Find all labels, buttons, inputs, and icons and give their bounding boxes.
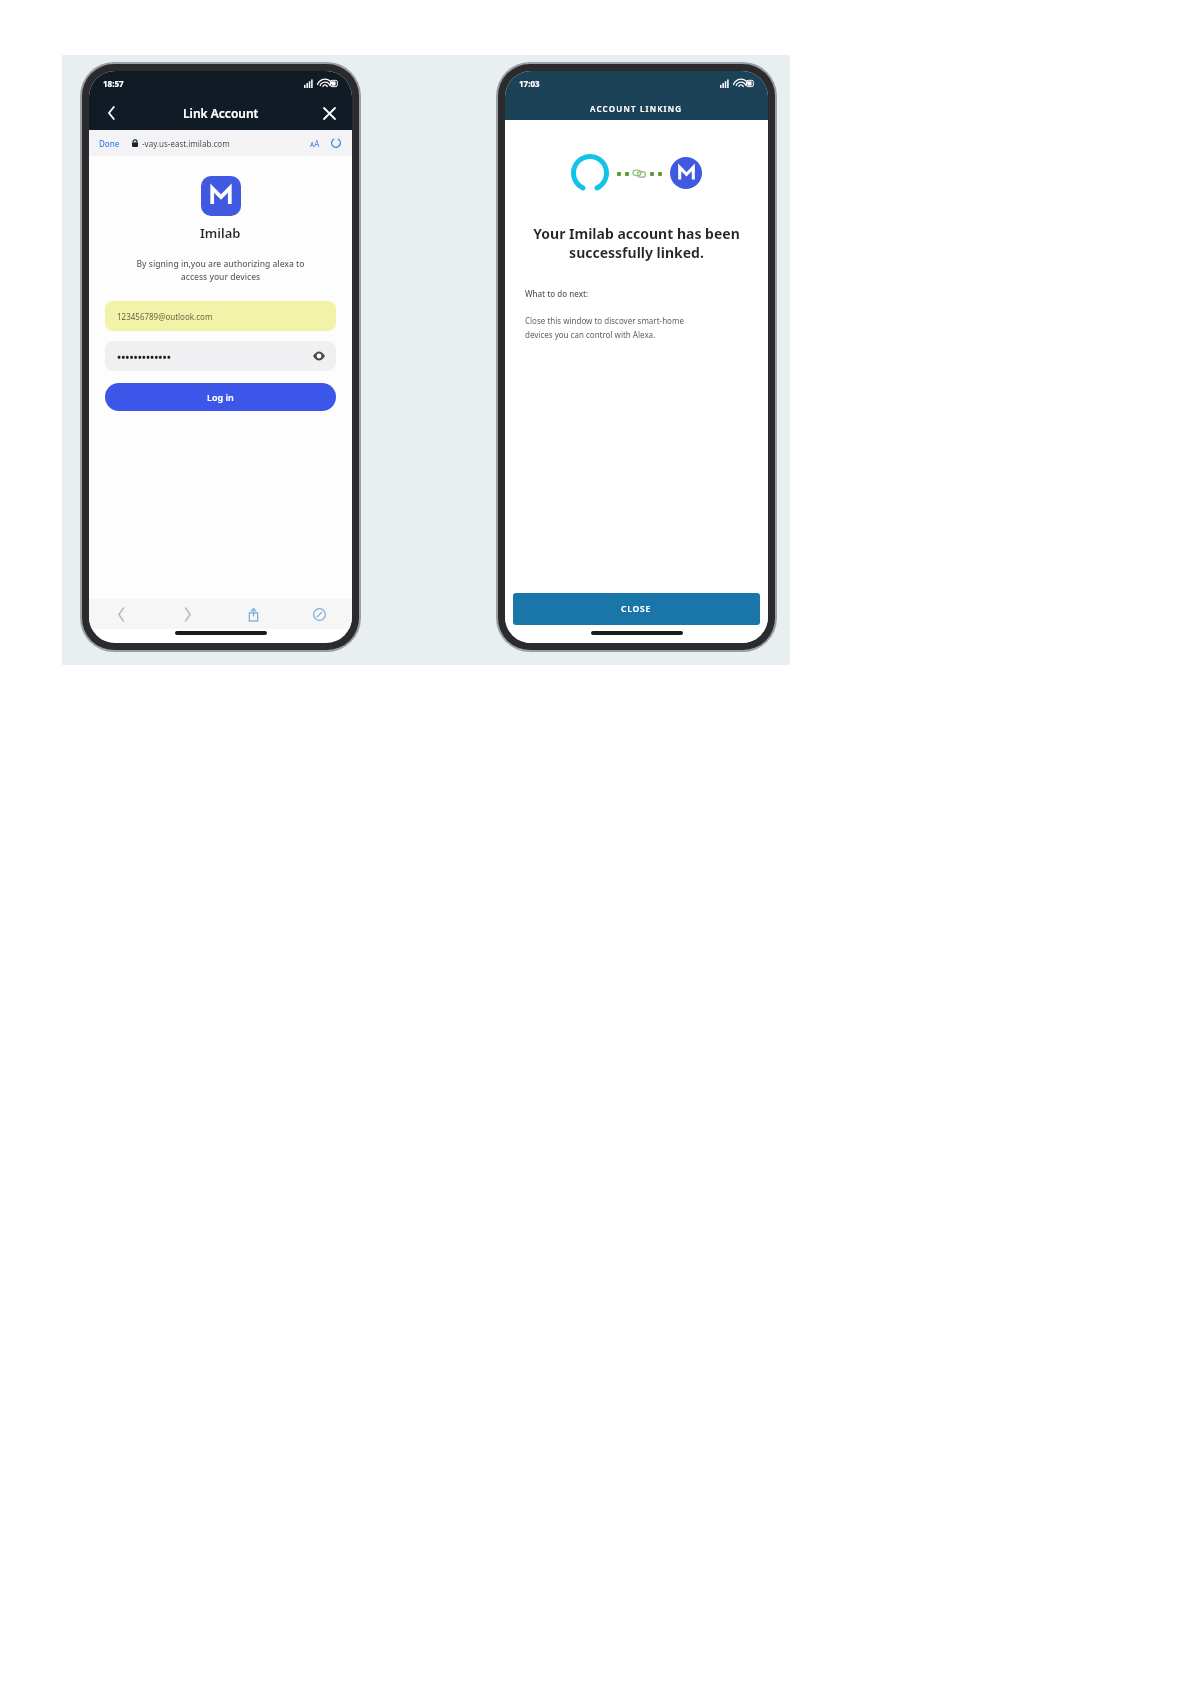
button[interactable]: 123456789@outlook.com bbox=[105, 301, 336, 331]
button[interactable]: Show password bbox=[312, 349, 326, 363]
staticText: Your Imilab account has been successfull… bbox=[519, 224, 754, 262]
staticText: Imilab bbox=[200, 224, 241, 242]
button[interactable]: CLOSE bbox=[513, 593, 760, 625]
staticText: ACCOUNT LINKING bbox=[590, 103, 683, 114]
button[interactable]: Forward bbox=[154, 599, 220, 629]
staticText: What to do next: bbox=[525, 288, 589, 299]
staticText: ••••••••••••• bbox=[117, 349, 171, 364]
button[interactable]: ᴀA bbox=[310, 138, 320, 149]
staticText: 123456789@outlook.com bbox=[117, 311, 213, 322]
button[interactable]: Back bbox=[89, 599, 154, 629]
button[interactable]: Reload bbox=[330, 137, 342, 149]
staticText: Link Account bbox=[183, 105, 259, 121]
button[interactable]: Back bbox=[95, 96, 129, 130]
staticText: Close this window to discover smart-home… bbox=[525, 315, 684, 340]
staticText: 17:03 bbox=[519, 78, 540, 89]
button[interactable]: Done bbox=[99, 138, 120, 149]
button[interactable]: Log in bbox=[105, 383, 336, 411]
staticText: CLOSE bbox=[621, 603, 652, 615]
staticText: Log in bbox=[207, 391, 234, 403]
button[interactable]: Share bbox=[220, 599, 286, 629]
staticText: 18:57 bbox=[103, 78, 124, 89]
staticText: -vay.us-east.imilab.com bbox=[142, 138, 230, 149]
button[interactable]: Tabs bbox=[286, 599, 352, 629]
button[interactable]: Close bbox=[312, 96, 346, 130]
staticText: By signing in,you are authorizing alexa … bbox=[109, 258, 332, 283]
button[interactable]: ••••••••••••• bbox=[105, 341, 336, 371]
